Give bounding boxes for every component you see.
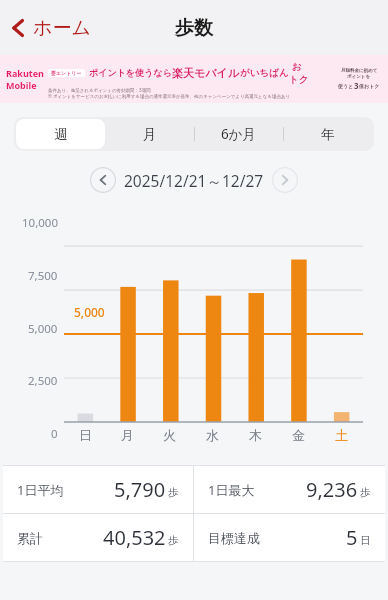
staticText: 5 xyxy=(346,524,358,551)
button[interactable]: Previous week xyxy=(90,167,116,193)
staticText: 土 xyxy=(335,427,348,443)
button[interactable]: Rakuten xyxy=(0,55,388,103)
staticText: がいちばん xyxy=(240,67,289,79)
staticText: 金 xyxy=(292,427,305,443)
button[interactable]: 月 xyxy=(105,119,194,149)
staticText: 1日平均 xyxy=(17,481,64,499)
staticText: ポイントを xyxy=(347,74,371,80)
button[interactable]: 1日平均 xyxy=(3,466,193,513)
staticText: 日 xyxy=(79,427,92,443)
staticText: 40,532 xyxy=(103,524,166,551)
staticText: 条件あり。進呈されるポイントの有効期間：3週間 xyxy=(48,87,151,93)
staticText: 歩数 xyxy=(175,16,213,40)
staticText: 1日最大 xyxy=(208,481,255,499)
staticText: 月 xyxy=(143,126,157,143)
staticText: 倍おトク xyxy=(359,83,380,89)
staticText: 0 xyxy=(51,426,58,442)
staticText: 木 xyxy=(249,427,262,443)
staticText: 歩 xyxy=(168,486,179,499)
staticText: 使うと xyxy=(338,83,354,89)
button[interactable]: ホーム xyxy=(0,10,101,46)
staticText: 週 xyxy=(54,126,68,143)
staticText: 2025/12/21～12/27 xyxy=(124,170,264,191)
staticText: おトク xyxy=(289,60,310,85)
staticText: 歩 xyxy=(168,534,179,547)
staticText: 目標達成 xyxy=(208,530,260,546)
staticText: 年 xyxy=(321,126,335,143)
button[interactable]: Next week xyxy=(272,167,298,193)
staticText: 日 xyxy=(360,534,371,547)
staticText: ポイントを使うなら xyxy=(89,67,172,78)
staticText: 月 xyxy=(121,427,134,443)
staticText: 3 xyxy=(354,80,359,91)
button[interactable]: 週 xyxy=(16,119,105,149)
staticText: Rakuten xyxy=(6,67,44,79)
staticText: 楽天モバイル xyxy=(172,66,240,80)
staticText: 5,000 xyxy=(74,304,105,320)
button[interactable]: 年 xyxy=(283,119,372,149)
staticText: 2,500 xyxy=(28,373,58,389)
staticText: 月額料金に初めて xyxy=(341,68,378,74)
staticText: 7,500 xyxy=(28,268,58,284)
button[interactable]: 1日最大 xyxy=(194,466,385,513)
staticText: 火 xyxy=(163,427,176,443)
staticText: ホーム xyxy=(33,16,91,40)
staticText: 6か月 xyxy=(221,125,257,143)
staticText: 5,000 xyxy=(28,321,58,337)
staticText: Mobile xyxy=(6,79,37,91)
staticText: ※ ポイントをサービスのお支払いに利用する場合の通常還元率が基準、他のキャンペー… xyxy=(48,93,291,99)
staticText: 要エントリー xyxy=(51,70,82,76)
staticText: 水 xyxy=(206,427,219,443)
staticText: 10,000 xyxy=(22,215,58,231)
staticText: 累計 xyxy=(17,530,43,546)
button[interactable]: 6か月 xyxy=(194,119,283,149)
staticText: 5,790 xyxy=(114,476,166,503)
staticText: 9,236 xyxy=(306,476,358,503)
button[interactable]: 目標達成 xyxy=(194,514,385,561)
staticText: 歩 xyxy=(360,486,371,499)
button[interactable]: 累計 xyxy=(3,514,193,561)
